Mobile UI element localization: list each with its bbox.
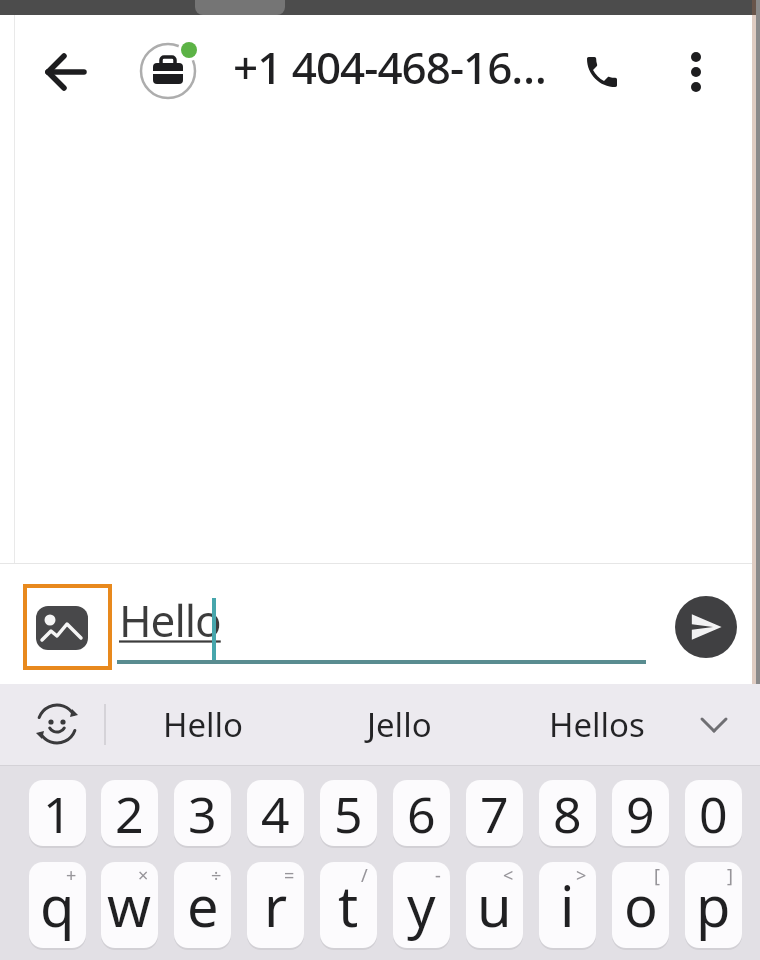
staticText: 9 xyxy=(626,780,655,846)
button[interactable]: e xyxy=(174,862,231,948)
button[interactable]: 7 xyxy=(466,780,523,846)
staticText: ] xyxy=(727,863,733,888)
staticText: 5 xyxy=(334,780,363,846)
staticText: Hello xyxy=(119,590,221,650)
button[interactable] xyxy=(675,596,737,658)
button[interactable] xyxy=(40,46,92,98)
staticText: 0 xyxy=(699,780,728,846)
button[interactable]: 6 xyxy=(393,780,450,846)
button[interactable]: Hellos xyxy=(502,684,692,765)
staticText: r xyxy=(264,867,288,943)
button[interactable]: u xyxy=(466,862,523,948)
staticText: p xyxy=(696,867,731,943)
button[interactable] xyxy=(30,697,84,751)
staticText: > xyxy=(576,863,587,888)
staticText: i xyxy=(560,867,575,943)
staticText: +1 404-468-16… xyxy=(233,37,547,97)
button[interactable]: o xyxy=(612,862,669,948)
staticText: q xyxy=(40,867,75,943)
button[interactable]: 3 xyxy=(174,780,231,846)
staticText: ÷ xyxy=(211,863,222,888)
staticText: e xyxy=(187,867,219,943)
staticText: o xyxy=(624,867,658,943)
staticText: 6 xyxy=(407,780,436,846)
button[interactable] xyxy=(672,46,720,98)
staticText: 2 xyxy=(115,780,144,846)
button[interactable]: w xyxy=(101,862,158,948)
staticText: t xyxy=(338,867,359,943)
staticText: 3 xyxy=(188,780,217,846)
button[interactable]: 2 xyxy=(101,780,158,846)
staticText: y xyxy=(407,867,436,943)
staticText: = xyxy=(284,863,295,888)
staticText: < xyxy=(503,863,514,888)
button[interactable]: 5 xyxy=(320,780,377,846)
button[interactable]: 9 xyxy=(612,780,669,846)
button[interactable]: q xyxy=(29,862,86,948)
staticText: Hellos xyxy=(549,702,645,747)
staticText: × xyxy=(138,863,149,888)
button[interactable] xyxy=(139,42,197,100)
staticText: [ xyxy=(654,863,660,888)
staticText: 7 xyxy=(480,780,509,846)
button[interactable] xyxy=(25,586,110,668)
button[interactable]: 8 xyxy=(539,780,596,846)
staticText: - xyxy=(435,863,441,888)
staticText: / xyxy=(361,863,368,888)
button[interactable]: r xyxy=(247,862,304,948)
button[interactable] xyxy=(580,50,624,94)
staticText: w xyxy=(107,867,152,943)
button[interactable]: 1 xyxy=(29,780,86,846)
staticText: 4 xyxy=(261,780,290,846)
staticText: Hello xyxy=(163,702,244,747)
button[interactable]: Hello xyxy=(110,684,296,765)
button[interactable]: 0 xyxy=(685,780,742,846)
staticText: + xyxy=(66,863,77,888)
button[interactable]: y xyxy=(393,862,450,948)
button[interactable] xyxy=(692,704,736,745)
staticText: u xyxy=(477,867,512,943)
button[interactable]: i xyxy=(539,862,596,948)
button[interactable]: Jello xyxy=(306,684,492,765)
staticText: 1 xyxy=(43,780,72,846)
staticText: 8 xyxy=(553,780,582,846)
button[interactable]: p xyxy=(685,862,742,948)
staticText: Jello xyxy=(367,702,432,747)
button[interactable]: t xyxy=(320,862,377,948)
button[interactable]: 4 xyxy=(247,780,304,846)
